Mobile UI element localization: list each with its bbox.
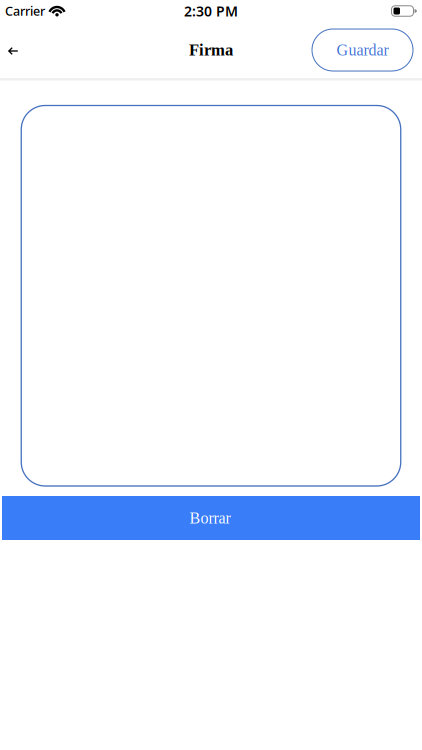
staticText: Firma xyxy=(189,41,233,59)
button[interactable]: Guardar xyxy=(312,29,413,71)
staticText: Borrar xyxy=(189,509,230,527)
staticText: Guardar xyxy=(336,41,388,59)
button[interactable]: Back xyxy=(0,36,18,63)
button[interactable]: Borrar xyxy=(2,496,420,540)
staticText: 2:30 PM xyxy=(184,1,238,21)
staticText: Carrier xyxy=(5,2,45,20)
